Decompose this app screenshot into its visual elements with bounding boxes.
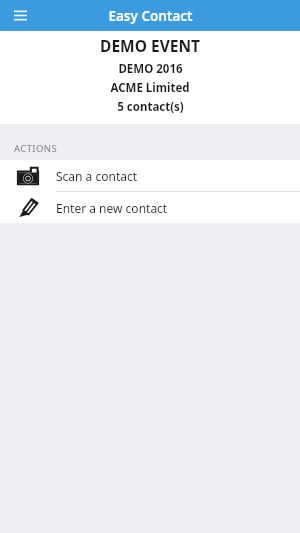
button[interactable]: Scan a contact [0,160,300,191]
staticText: DEMO 2016 [118,61,183,77]
staticText: ACME Limited [110,80,190,96]
staticText: Enter a new contact [56,200,168,216]
staticText: ACTIONS [14,142,58,155]
staticText: DEMO EVENT [100,35,200,56]
other: Scan a contact [16,164,40,188]
staticText: Scan a contact [56,168,138,184]
staticText: Easy Contact [108,7,193,25]
staticText: 5 contact(s) [117,99,184,115]
other: Enter a new contact [16,196,40,220]
button[interactable]: Open navigation menu [0,0,40,31]
button[interactable]: Enter a new contact [0,192,300,223]
